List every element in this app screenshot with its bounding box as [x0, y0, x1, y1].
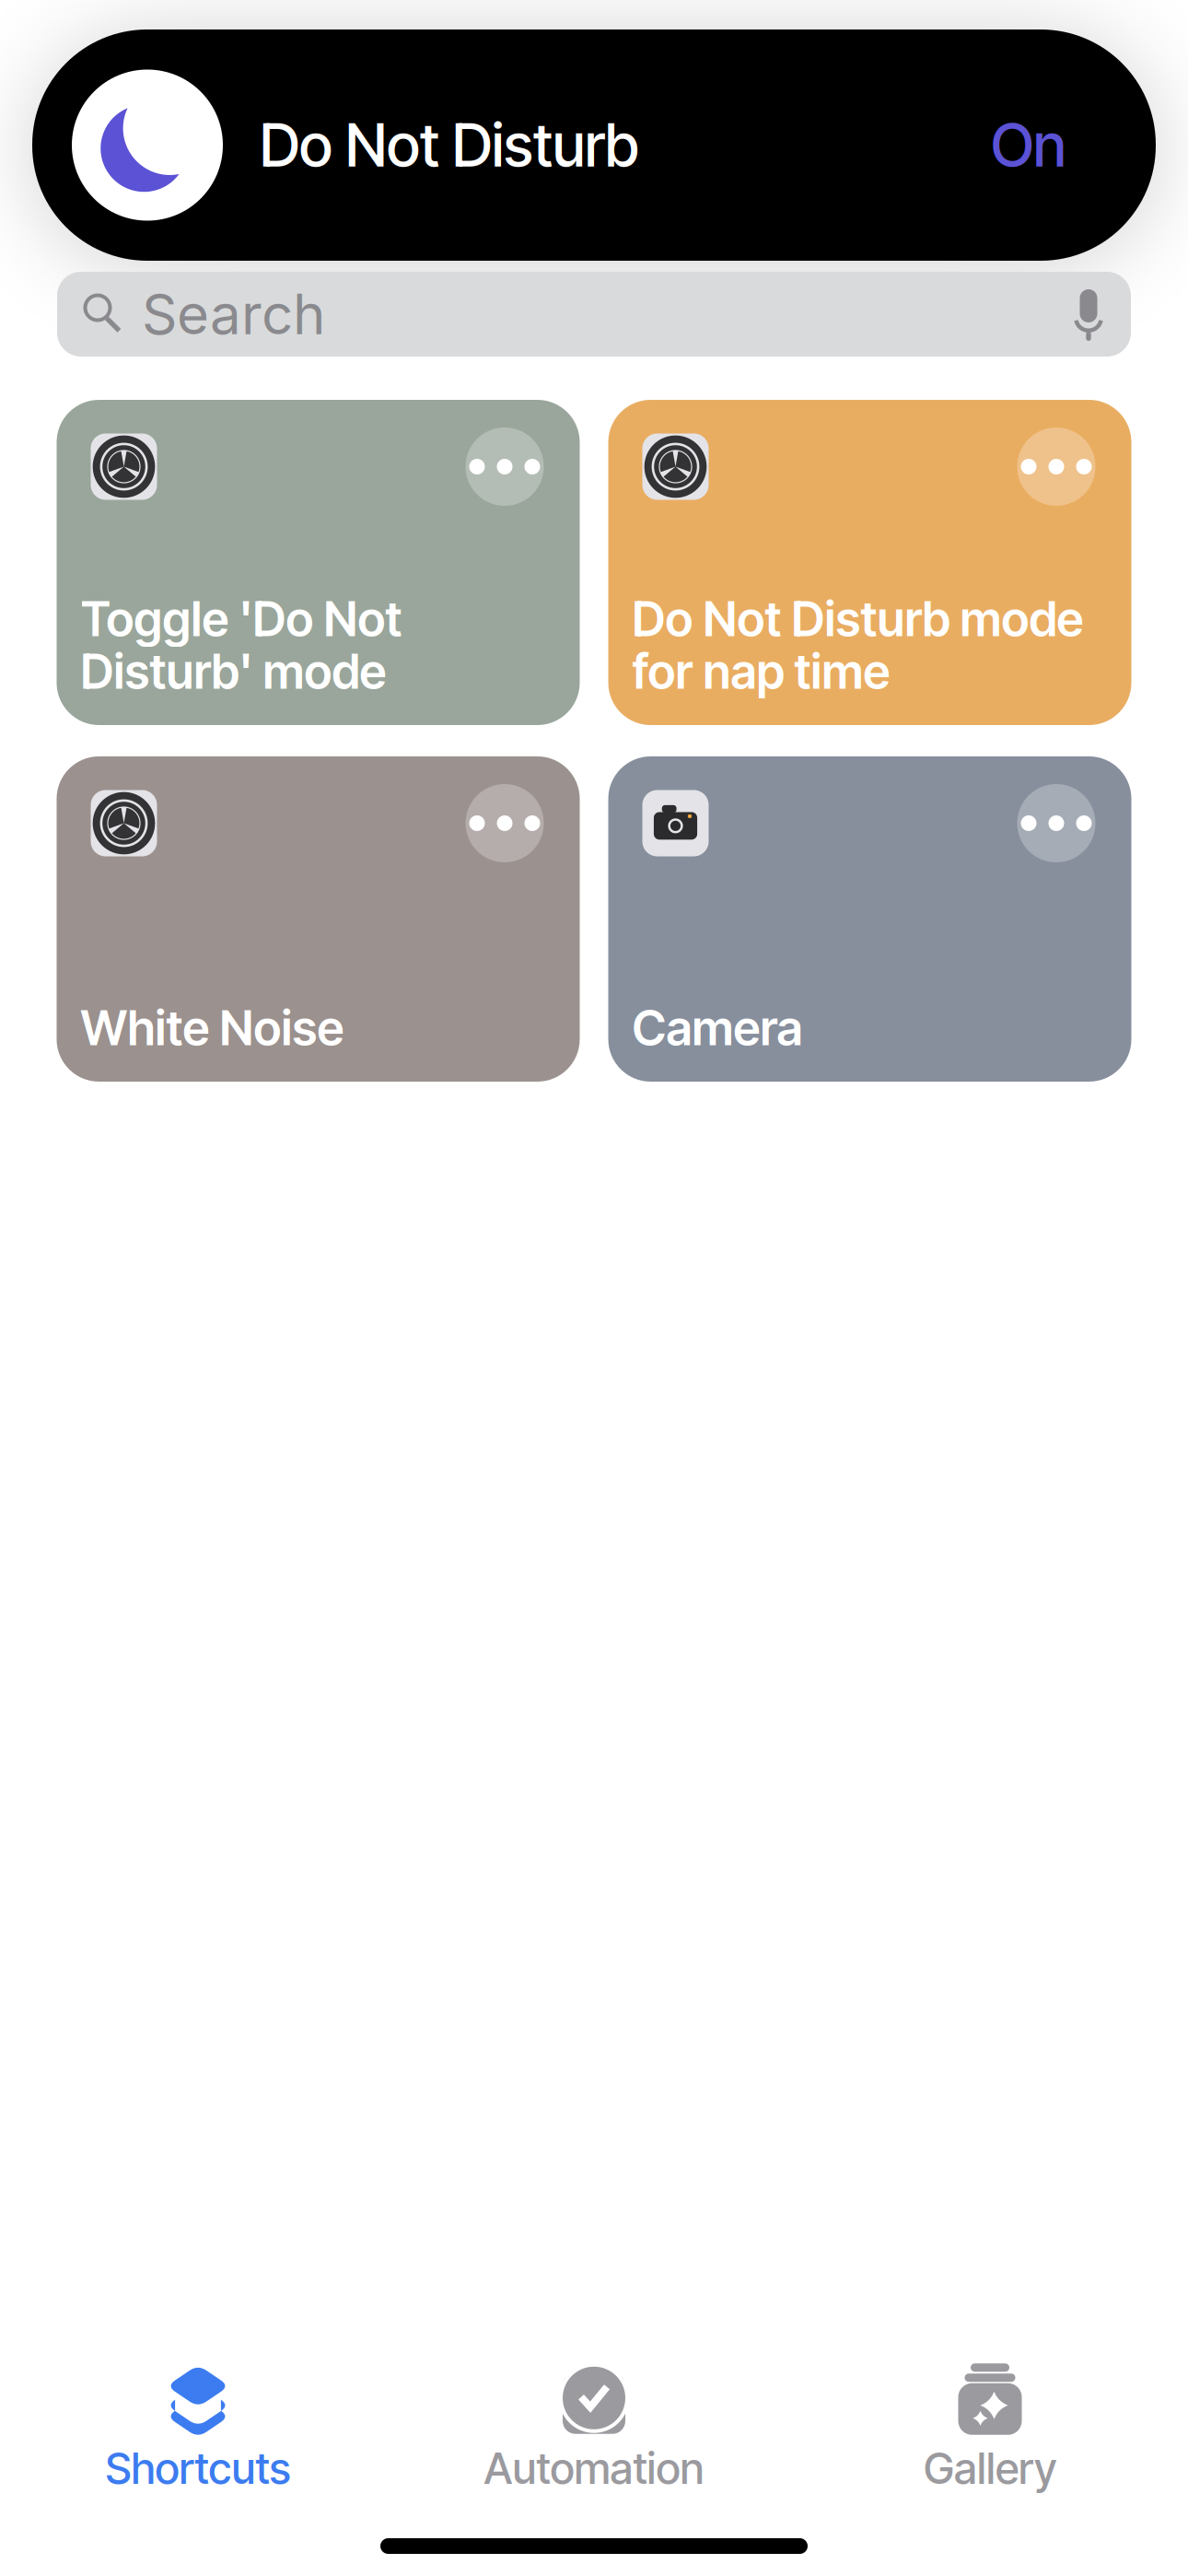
staticText: White Noise: [81, 999, 344, 1057]
button[interactable]: More options: [1017, 784, 1095, 862]
button[interactable]: Toggle 'Do Not: [57, 400, 580, 725]
button[interactable]: Automation: [396, 2359, 792, 2496]
staticText: Do Not Disturb mode: [632, 590, 1083, 648]
staticText: Gallery: [924, 2442, 1056, 2494]
button[interactable]: Search: [57, 272, 1131, 357]
staticText: for nap time: [632, 642, 890, 700]
button[interactable]: More options: [1017, 427, 1095, 506]
button[interactable]: Camera: [608, 756, 1131, 1082]
button[interactable]: White Noise: [57, 756, 580, 1082]
button[interactable]: Do Not Disturb mode: [608, 400, 1131, 725]
staticText: Search: [142, 281, 325, 348]
button[interactable]: Shortcuts: [0, 2359, 396, 2496]
button[interactable]: Gallery: [792, 2359, 1188, 2496]
staticText: Toggle 'Do Not: [81, 590, 402, 648]
button[interactable]: Do Not Disturb: [32, 29, 1156, 261]
staticText: Disturb' mode: [81, 642, 386, 700]
button[interactable]: More options: [466, 427, 544, 506]
staticText: Shortcuts: [105, 2442, 291, 2494]
staticText: Do Not Disturb: [260, 109, 639, 181]
staticText: Automation: [484, 2442, 704, 2494]
staticText: Camera: [632, 999, 803, 1057]
button[interactable]: More options: [466, 784, 544, 862]
staticText: On: [991, 109, 1066, 181]
